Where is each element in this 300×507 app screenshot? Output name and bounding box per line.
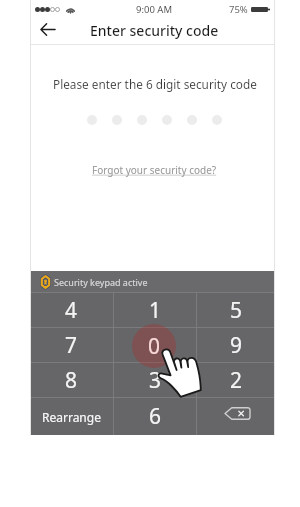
button[interactable]: Forgot your security code? — [92, 163, 217, 177]
button[interactable] — [114, 328, 196, 362]
button[interactable]: 4 — [30, 293, 113, 327]
staticText: 8 — [65, 366, 78, 395]
staticText: Rearrange — [42, 409, 101, 425]
other: Backspace — [224, 407, 251, 420]
button[interactable]: 5 — [197, 293, 275, 327]
staticText: 5 — [230, 296, 243, 325]
button[interactable]: 7 — [30, 328, 113, 362]
staticText: Forgot your security code? — [92, 163, 217, 177]
button[interactable]: Back — [38, 19, 58, 39]
staticText: 3 — [149, 366, 162, 395]
button[interactable]: 3 — [114, 363, 196, 397]
staticText: 1 — [149, 296, 162, 325]
staticText: 9 — [230, 331, 243, 360]
staticText: 4 — [65, 296, 78, 325]
staticText: 75% — [229, 3, 248, 16]
button[interactable]: 6 — [114, 398, 196, 435]
button[interactable]: Backspace — [197, 398, 275, 435]
button[interactable]: 2 — [197, 363, 275, 397]
button[interactable]: Rearrange — [30, 398, 113, 435]
button[interactable]: 8 — [30, 363, 113, 397]
staticText: Enter security code — [90, 21, 219, 40]
staticText: Security keypad active — [54, 276, 148, 288]
staticText: 9:00 AM — [136, 3, 173, 16]
staticText: 6 — [149, 402, 162, 431]
staticText: 0 — [148, 332, 161, 361]
staticText: 7 — [65, 331, 78, 360]
button[interactable]: 1 — [114, 293, 196, 327]
button[interactable]: 9 — [197, 328, 275, 362]
staticText: 2 — [230, 366, 243, 395]
staticText: Please enter the 6 digit security code — [53, 76, 257, 92]
